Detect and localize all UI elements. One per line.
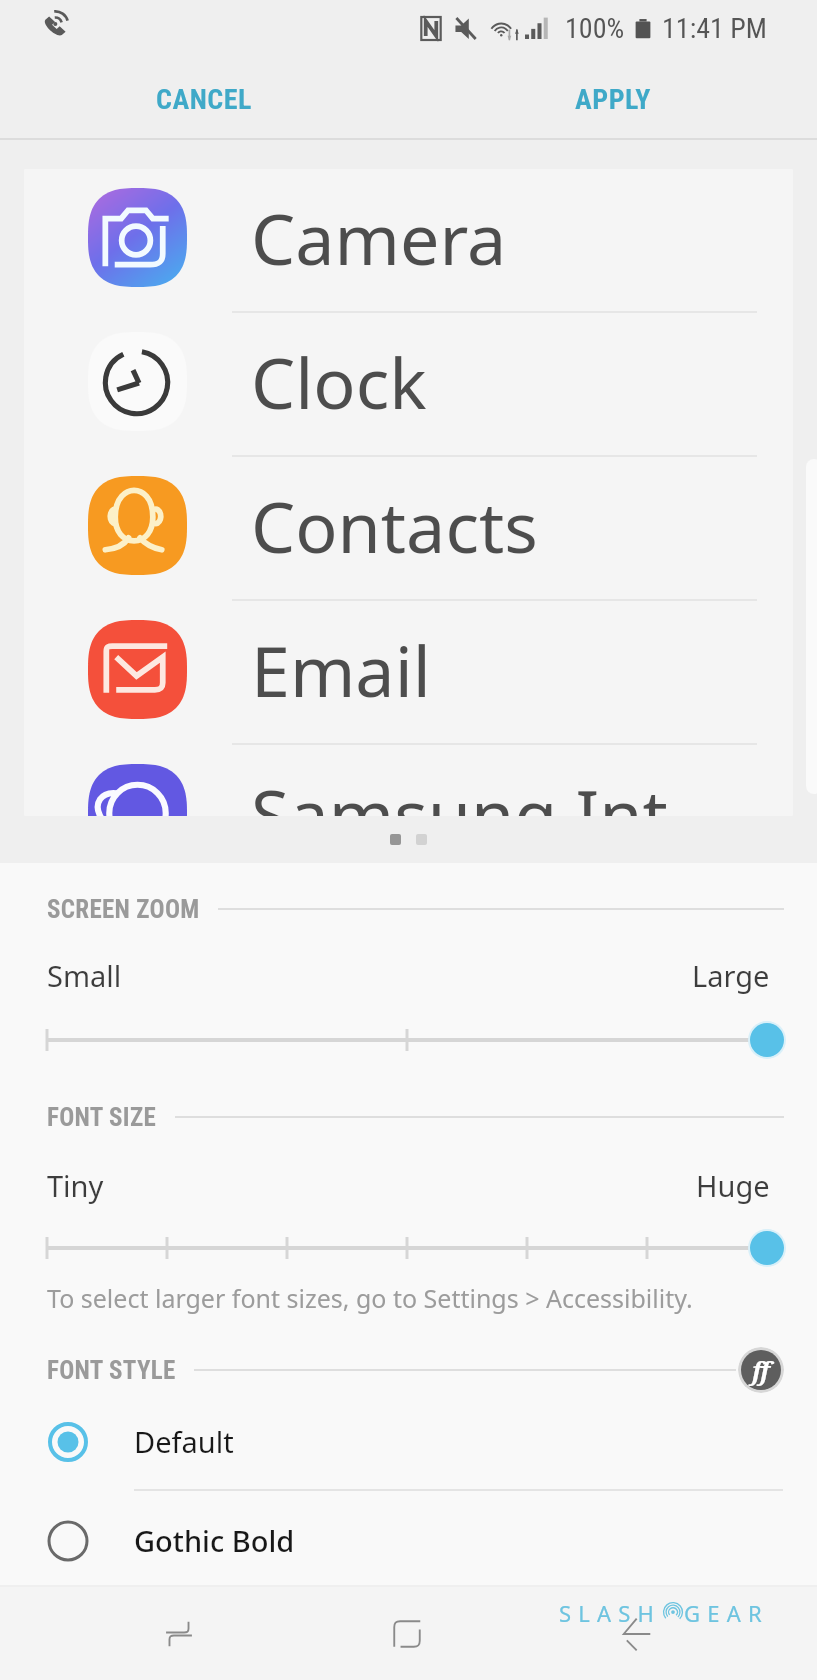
staticText: 11:41 PM bbox=[662, 12, 767, 45]
button[interactable]: Font style options bbox=[738, 1347, 784, 1393]
button[interactable]: Camera bbox=[24, 169, 793, 313]
button[interactable] bbox=[47, 1224, 786, 1272]
staticText: Small bbox=[47, 956, 122, 995]
button[interactable]: Contacts bbox=[24, 457, 793, 601]
staticText: CANCEL bbox=[156, 83, 252, 116]
staticText: FONT STYLE bbox=[47, 1356, 176, 1385]
staticText: Clock bbox=[251, 334, 427, 429]
staticText: 100% bbox=[565, 12, 625, 45]
staticText: Contacts bbox=[251, 478, 538, 573]
staticText: APPLY bbox=[575, 83, 651, 116]
button[interactable]: Default bbox=[0, 1392, 817, 1491]
button[interactable]: Clock bbox=[24, 313, 793, 457]
staticText: Tiny bbox=[47, 1166, 104, 1205]
button[interactable]: Samsung Int bbox=[24, 745, 793, 816]
staticText: GEAR bbox=[684, 1598, 769, 1628]
staticText: Samsung Int bbox=[251, 766, 668, 816]
staticText: SLASH bbox=[559, 1598, 662, 1628]
button[interactable]: Email bbox=[24, 601, 793, 745]
button[interactable]: APPLY bbox=[408, 58, 817, 140]
button[interactable]: Home bbox=[361, 1585, 453, 1680]
button[interactable] bbox=[47, 1016, 786, 1064]
staticText: ff bbox=[752, 1353, 771, 1387]
staticText: Large bbox=[692, 956, 770, 995]
staticText: SCREEN ZOOM bbox=[47, 895, 200, 924]
staticText: Gothic Bold bbox=[134, 1521, 295, 1560]
button[interactable]: CANCEL bbox=[0, 58, 408, 140]
staticText: Camera bbox=[251, 190, 507, 285]
button[interactable]: Recent apps bbox=[133, 1585, 225, 1680]
staticText: Huge bbox=[696, 1166, 770, 1205]
button[interactable]: Back bbox=[590, 1585, 682, 1680]
staticText: Default bbox=[134, 1422, 234, 1461]
staticText: Email bbox=[251, 622, 431, 717]
button[interactable]: Gothic Bold bbox=[0, 1491, 817, 1590]
staticText: To select larger font sizes, go to Setti… bbox=[47, 1281, 693, 1315]
staticText: FONT SIZE bbox=[47, 1103, 157, 1132]
button[interactable]: Camera bbox=[24, 169, 793, 816]
